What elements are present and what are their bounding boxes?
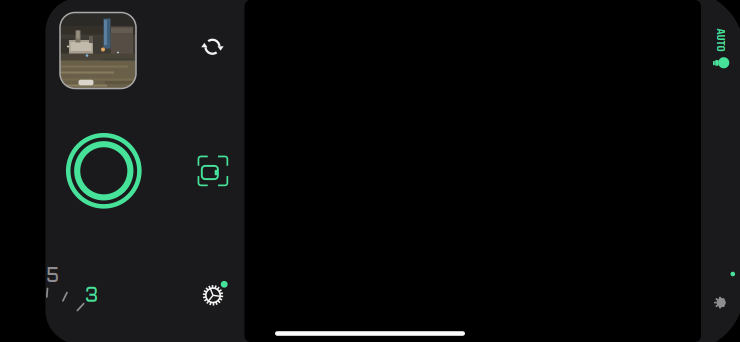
button[interactable]: Settings <box>197 273 231 307</box>
button[interactable]: Flash mode <box>708 54 729 72</box>
button[interactable]: Capture mode <box>197 155 228 186</box>
staticText: AUTO <box>710 31 733 50</box>
button[interactable]: Photo library <box>60 12 136 88</box>
button[interactable]: Switch camera <box>200 35 224 59</box>
staticText: 3 <box>85 287 98 306</box>
button[interactable]: Flash auto <box>706 33 736 47</box>
button[interactable]: Brightness <box>713 296 726 309</box>
staticText: 5 <box>46 268 59 286</box>
button[interactable]: Shutter <box>64 131 144 211</box>
